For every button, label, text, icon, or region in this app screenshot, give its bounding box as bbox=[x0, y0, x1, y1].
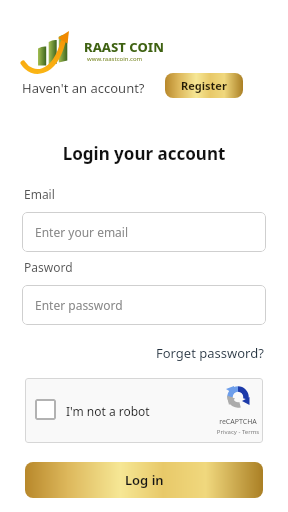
button[interactable]: Forget password? bbox=[156, 344, 264, 362]
button[interactable]: Log in bbox=[25, 462, 263, 498]
button[interactable]: Enter your email bbox=[22, 212, 266, 252]
button[interactable]: Register bbox=[165, 73, 243, 98]
staticText: reCAPTCHA bbox=[213, 417, 263, 427]
staticText: Haven't an account? bbox=[22, 79, 145, 97]
button[interactable]: Enter password bbox=[22, 285, 266, 325]
staticText: Privacy - Terms bbox=[213, 428, 263, 436]
staticText: Register bbox=[181, 78, 227, 93]
staticText: Enter password bbox=[35, 297, 123, 313]
staticText: www.raastcoin.com bbox=[87, 55, 143, 63]
staticText: Login your account bbox=[0, 142, 288, 165]
staticText: Enter your email bbox=[35, 224, 129, 240]
button[interactable] bbox=[35, 399, 56, 420]
staticText: RAAST COIN bbox=[84, 38, 164, 56]
staticText: I'm not a robot bbox=[66, 403, 150, 419]
staticText: Email bbox=[24, 186, 55, 202]
staticText: Log in bbox=[125, 471, 164, 489]
staticText: Pasword bbox=[24, 259, 73, 275]
